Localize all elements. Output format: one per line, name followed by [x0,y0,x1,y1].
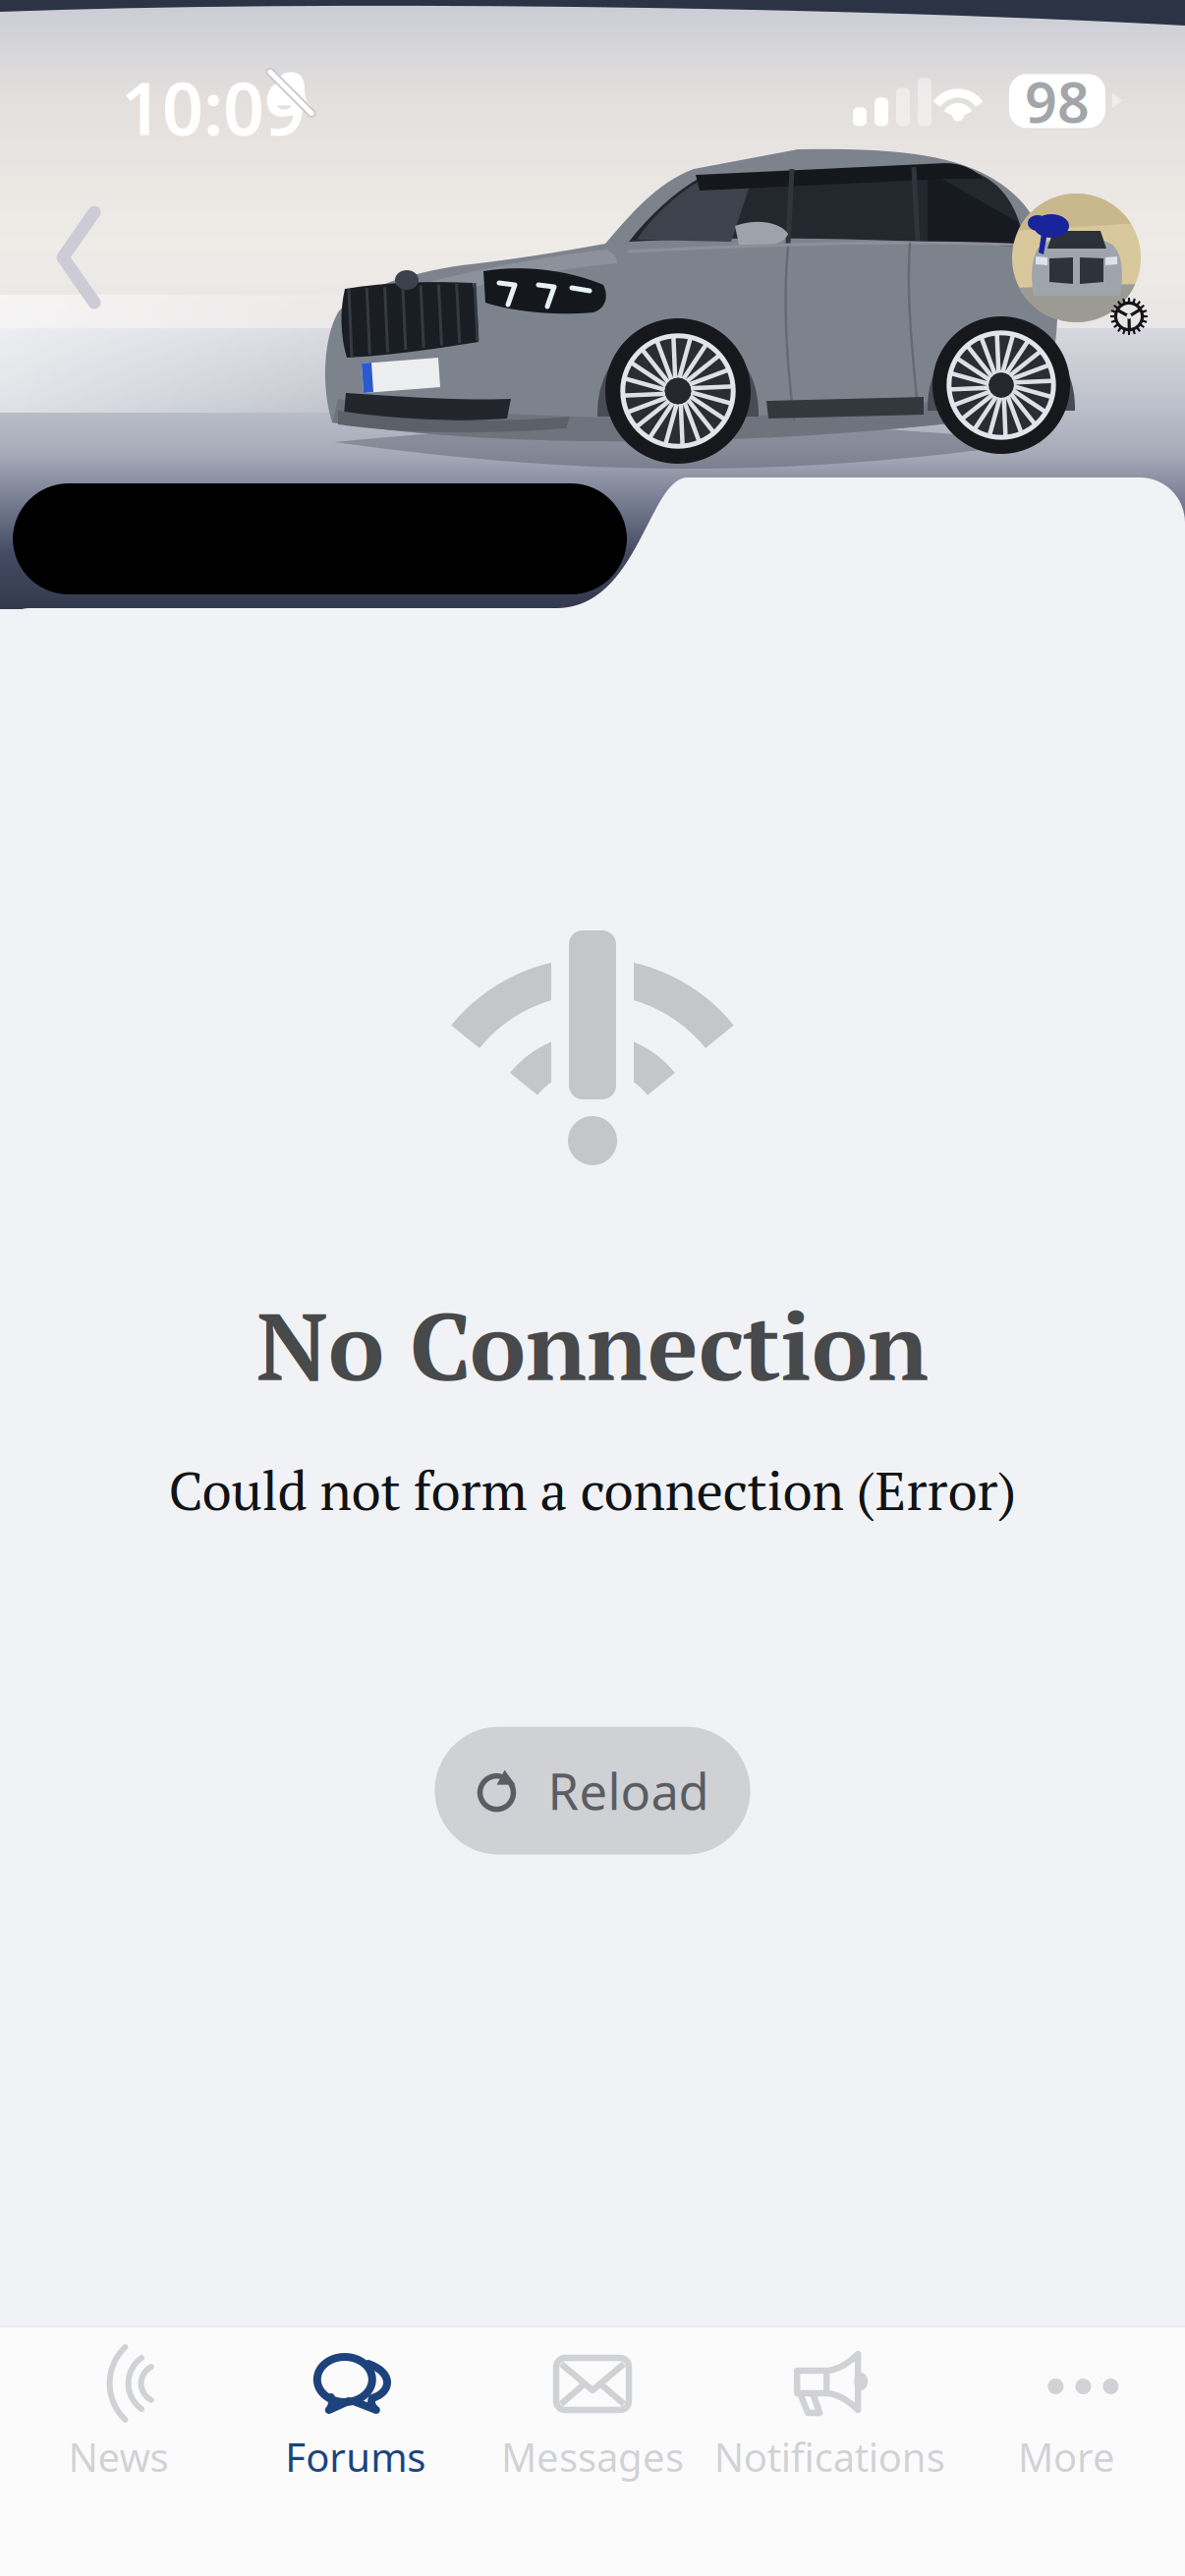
button[interactable]: Settings [1109,297,1149,336]
staticText: Forums [285,2431,426,2483]
staticText: Notifications [714,2431,945,2483]
button[interactable]: Notifications [711,2325,948,2576]
staticText: No Connection [256,1282,929,1407]
staticText: 10:09 [121,59,306,155]
button[interactable]: Forums [237,2325,474,2576]
staticText: Reload [548,1758,709,1824]
staticText: Messages [501,2431,684,2483]
staticText: 98 [1025,64,1090,138]
staticText: News [68,2431,169,2483]
button[interactable]: More [948,2325,1185,2576]
button[interactable]: Reload [435,1727,750,1854]
button[interactable]: News [0,2325,237,2576]
button[interactable]: Back [29,187,138,334]
staticText: More [1018,2431,1115,2483]
button[interactable]: Profile [1012,194,1141,322]
button[interactable]: Messages [474,2325,711,2576]
staticText: Could not form a connection (Error) [169,1454,1016,1525]
